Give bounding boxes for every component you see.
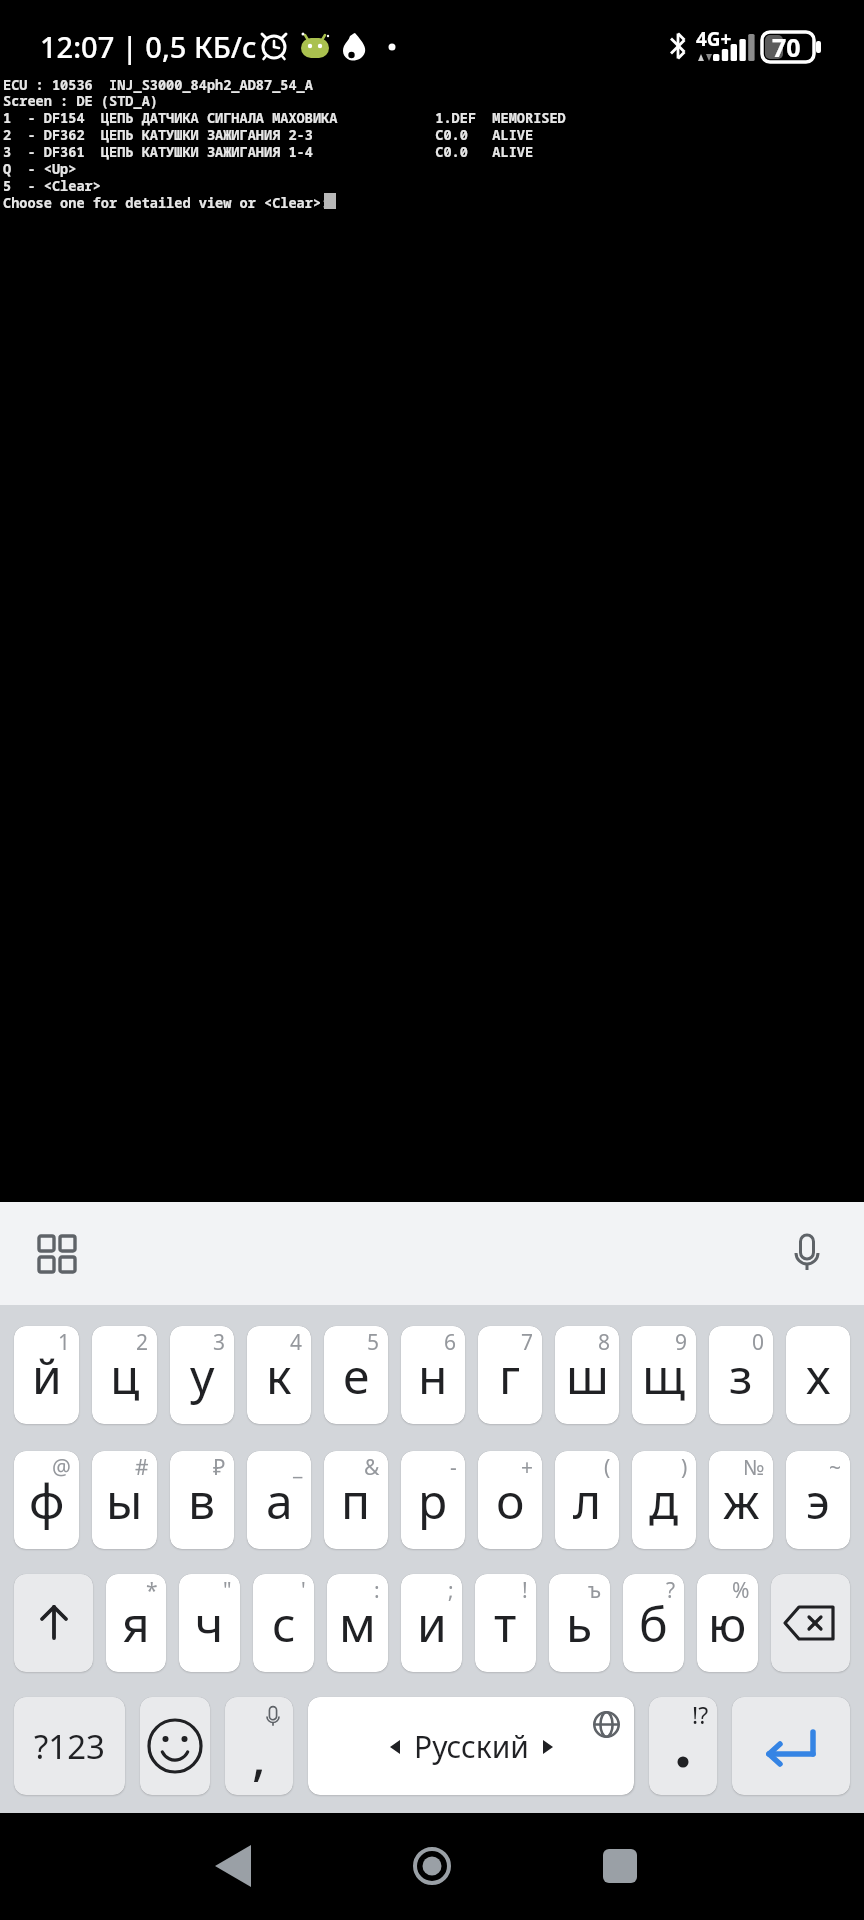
staticText: 1: [58, 1328, 71, 1357]
staticText: 7: [521, 1328, 534, 1357]
button[interactable]: ы: [92, 1451, 157, 1549]
staticText: -: [450, 1453, 457, 1482]
button[interactable]: м: [327, 1574, 388, 1672]
staticText: к: [266, 1343, 292, 1408]
staticText: 3: [213, 1328, 226, 1357]
staticText: ?123: [34, 1724, 105, 1769]
staticText: ECU : 10536 INJ_S3000_84ph2_AD87_54_A Sc…: [3, 75, 566, 212]
staticText: ?: [666, 1576, 676, 1605]
staticText: ;: [448, 1576, 454, 1605]
button[interactable]: и: [401, 1574, 462, 1672]
staticText: 4: [290, 1328, 303, 1357]
button[interactable]: щ: [632, 1326, 696, 1424]
staticText: 6: [444, 1328, 457, 1357]
staticText: ₽: [213, 1453, 226, 1482]
button[interactable]: [203, 1836, 263, 1896]
staticText: ): [681, 1453, 688, 1482]
staticText: (: [604, 1453, 611, 1482]
staticText: г: [499, 1343, 521, 1408]
staticText: 8: [598, 1328, 611, 1357]
staticText: я: [122, 1591, 150, 1656]
button[interactable]: [590, 1836, 650, 1896]
staticText: :: [374, 1576, 380, 1605]
button[interactable]: п: [324, 1451, 388, 1549]
button[interactable]: ?123: [14, 1697, 125, 1795]
staticText: м: [339, 1591, 376, 1656]
button[interactable]: ч: [179, 1574, 240, 1672]
button[interactable]: [402, 1836, 462, 1896]
button[interactable]: д: [632, 1451, 696, 1549]
button[interactable]: а: [247, 1451, 311, 1549]
staticText: 0: [752, 1328, 765, 1357]
staticText: 2: [136, 1328, 149, 1357]
staticText: й: [32, 1343, 62, 1408]
staticText: э: [806, 1468, 830, 1533]
button[interactable]: ,: [225, 1697, 293, 1795]
staticText: +: [521, 1453, 534, 1482]
staticText: ь: [566, 1591, 593, 1656]
staticText: ф: [29, 1468, 65, 1533]
button[interactable]: й: [14, 1326, 79, 1424]
button[interactable]: б: [623, 1574, 684, 1672]
staticText: ': [301, 1576, 306, 1605]
button[interactable]: в: [170, 1451, 234, 1549]
button[interactable]: Русский: [308, 1697, 634, 1795]
button[interactable]: !?: [649, 1697, 717, 1795]
staticText: и: [417, 1591, 447, 1656]
button[interactable]: ь: [549, 1574, 610, 1672]
staticText: б: [639, 1591, 668, 1656]
staticText: у: [190, 1343, 215, 1408]
button[interactable]: [140, 1697, 210, 1795]
button[interactable]: [27, 1224, 87, 1284]
staticText: @: [52, 1453, 71, 1482]
button[interactable]: т: [475, 1574, 536, 1672]
button[interactable]: ш: [555, 1326, 619, 1424]
button[interactable]: е: [324, 1326, 388, 1424]
staticText: 4G+: [696, 26, 732, 52]
button[interactable]: к: [247, 1326, 311, 1424]
staticText: ж: [723, 1468, 760, 1533]
staticText: ю: [708, 1591, 747, 1656]
staticText: %: [732, 1576, 750, 1605]
button[interactable]: я: [106, 1574, 166, 1672]
staticText: п: [341, 1468, 371, 1533]
button[interactable]: ж: [709, 1451, 773, 1549]
button[interactable]: э: [786, 1451, 850, 1549]
button[interactable]: о: [478, 1451, 542, 1549]
staticText: ": [223, 1576, 232, 1605]
button[interactable]: ц: [92, 1326, 157, 1424]
button[interactable]: ф: [14, 1451, 79, 1549]
button[interactable]: з: [709, 1326, 773, 1424]
button[interactable]: н: [401, 1326, 465, 1424]
staticText: *: [146, 1576, 158, 1605]
staticText: !: [522, 1576, 528, 1605]
staticText: е: [343, 1343, 370, 1408]
staticText: р: [418, 1468, 448, 1533]
staticText: 70: [772, 30, 801, 64]
staticText: ч: [195, 1591, 224, 1656]
button[interactable]: р: [401, 1451, 465, 1549]
staticText: а: [266, 1468, 293, 1533]
staticText: л: [573, 1468, 602, 1533]
button[interactable]: [771, 1574, 850, 1672]
button[interactable]: [14, 1574, 93, 1672]
button[interactable]: [777, 1224, 837, 1284]
button[interactable]: с: [253, 1574, 314, 1672]
button[interactable]: л: [555, 1451, 619, 1549]
staticText: Русский: [414, 1726, 529, 1767]
staticText: &: [364, 1453, 380, 1482]
staticText: ц: [110, 1343, 140, 1408]
button[interactable]: у: [170, 1326, 234, 1424]
staticText: ,: [252, 1722, 266, 1790]
staticText: ы: [106, 1468, 143, 1533]
button[interactable]: х: [786, 1326, 850, 1424]
staticText: ъ: [588, 1576, 602, 1605]
button[interactable]: г: [478, 1326, 542, 1424]
staticText: о: [496, 1468, 525, 1533]
staticText: х: [806, 1343, 831, 1408]
button[interactable]: ю: [697, 1574, 758, 1672]
staticText: в: [188, 1468, 216, 1533]
staticText: т: [494, 1591, 517, 1656]
button[interactable]: [732, 1697, 850, 1795]
staticText: 9: [675, 1328, 688, 1357]
